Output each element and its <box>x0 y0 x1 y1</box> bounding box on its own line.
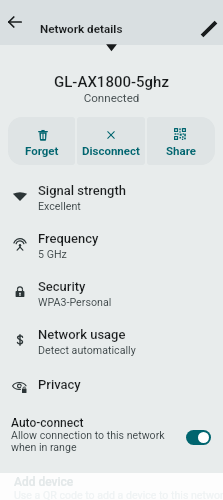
button[interactable]: Frequency <box>0 220 223 268</box>
staticText: WPA3-Personal <box>38 296 112 309</box>
staticText: Share <box>166 144 196 157</box>
button[interactable]: Privacy <box>0 362 223 410</box>
staticText: Use a QR code to add a device to this ne… <box>14 489 223 500</box>
staticText: Detect automatically <box>38 344 136 357</box>
staticText: Excellent <box>38 200 81 213</box>
button[interactable]: Forget <box>8 117 75 165</box>
button[interactable]: Network usage <box>0 316 223 364</box>
staticText: 5 GHz <box>38 248 67 261</box>
button[interactable]: Disconnect <box>77 117 145 165</box>
staticText: GL-AX1800-5ghz <box>0 73 223 91</box>
button[interactable]: Share <box>147 117 215 165</box>
staticText: Allow connection to this network when in… <box>11 429 169 454</box>
button[interactable]: Signal strength <box>0 172 223 220</box>
button[interactable]: Security <box>0 268 223 316</box>
button[interactable]: Auto-connect <box>0 405 223 463</box>
staticText: Privacy <box>38 377 81 392</box>
staticText: Auto-connect <box>11 416 84 430</box>
staticText: Frequency <box>38 231 99 246</box>
staticText: Network usage <box>38 327 126 342</box>
staticText: Add device <box>14 475 74 489</box>
staticText: Forget <box>25 144 59 157</box>
staticText: Connected <box>0 91 223 105</box>
staticText: Signal strength <box>38 183 126 198</box>
button[interactable]: Add device <box>0 473 223 500</box>
button[interactable]: Back <box>4 11 26 33</box>
button[interactable]: Edit network name <box>198 18 220 40</box>
staticText: Network details <box>40 22 123 36</box>
button[interactable]: Auto-connect toggle <box>186 430 211 445</box>
staticText: Disconnect <box>82 144 140 157</box>
staticText: Security <box>38 279 86 294</box>
